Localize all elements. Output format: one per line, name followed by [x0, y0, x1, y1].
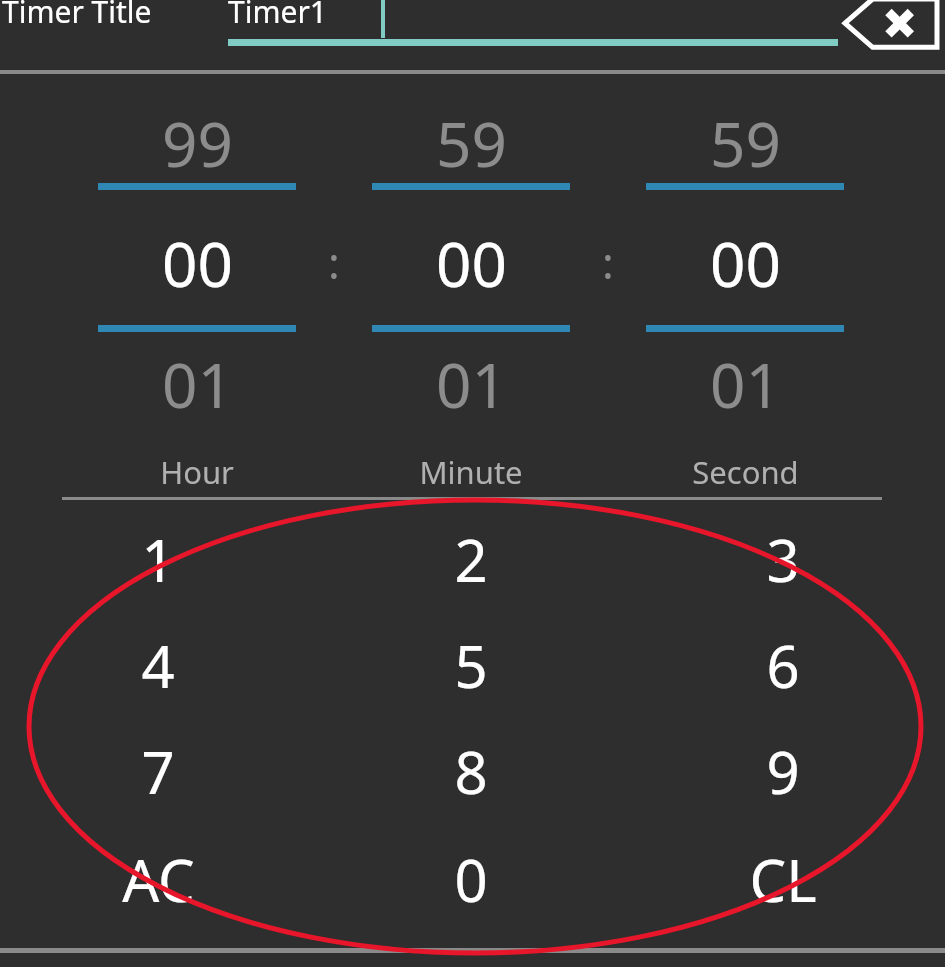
staticText: 5	[454, 626, 488, 705]
button[interactable]: CL	[679, 826, 887, 932]
button[interactable]: 9	[679, 718, 887, 824]
staticText: 8	[454, 732, 488, 811]
button[interactable]: 5	[367, 612, 575, 718]
button[interactable]: 3	[679, 506, 887, 612]
staticText: 99	[162, 101, 233, 185]
button[interactable]: 8	[367, 718, 575, 824]
button[interactable]: 6	[679, 612, 887, 718]
staticText: 4	[141, 626, 175, 705]
staticText: 01	[436, 342, 507, 426]
staticText: 00	[162, 221, 233, 305]
staticText: 00	[436, 221, 507, 305]
staticText: 3	[766, 520, 800, 599]
staticText: AC	[122, 840, 195, 919]
staticText: 2	[454, 520, 488, 599]
staticText: 00	[710, 221, 781, 305]
staticText: Timer1	[228, 0, 327, 32]
staticText: 7	[141, 732, 175, 811]
staticText: 9	[766, 732, 800, 811]
staticText: 1	[141, 520, 175, 599]
button[interactable]: AC	[54, 826, 262, 932]
staticText: CL	[749, 840, 817, 919]
staticText: Hour	[160, 451, 234, 493]
staticText: Timer Title	[2, 0, 152, 32]
staticText: 59	[436, 101, 507, 185]
staticText: 59	[710, 101, 781, 185]
staticText: Minute	[419, 451, 523, 493]
staticText: 01	[162, 342, 233, 426]
staticText: 6	[766, 626, 800, 705]
button[interactable]: 7	[54, 718, 262, 824]
button[interactable]: 0	[367, 826, 575, 932]
staticText: Second	[692, 451, 799, 493]
staticText: 0	[454, 840, 488, 919]
staticText: :	[602, 232, 614, 292]
staticText: 01	[710, 342, 781, 426]
staticText: :	[328, 232, 340, 292]
button[interactable]: Clear title	[845, 0, 937, 48]
button[interactable]: 1	[54, 506, 262, 612]
button[interactable]: 2	[367, 506, 575, 612]
button[interactable]: 4	[54, 612, 262, 718]
